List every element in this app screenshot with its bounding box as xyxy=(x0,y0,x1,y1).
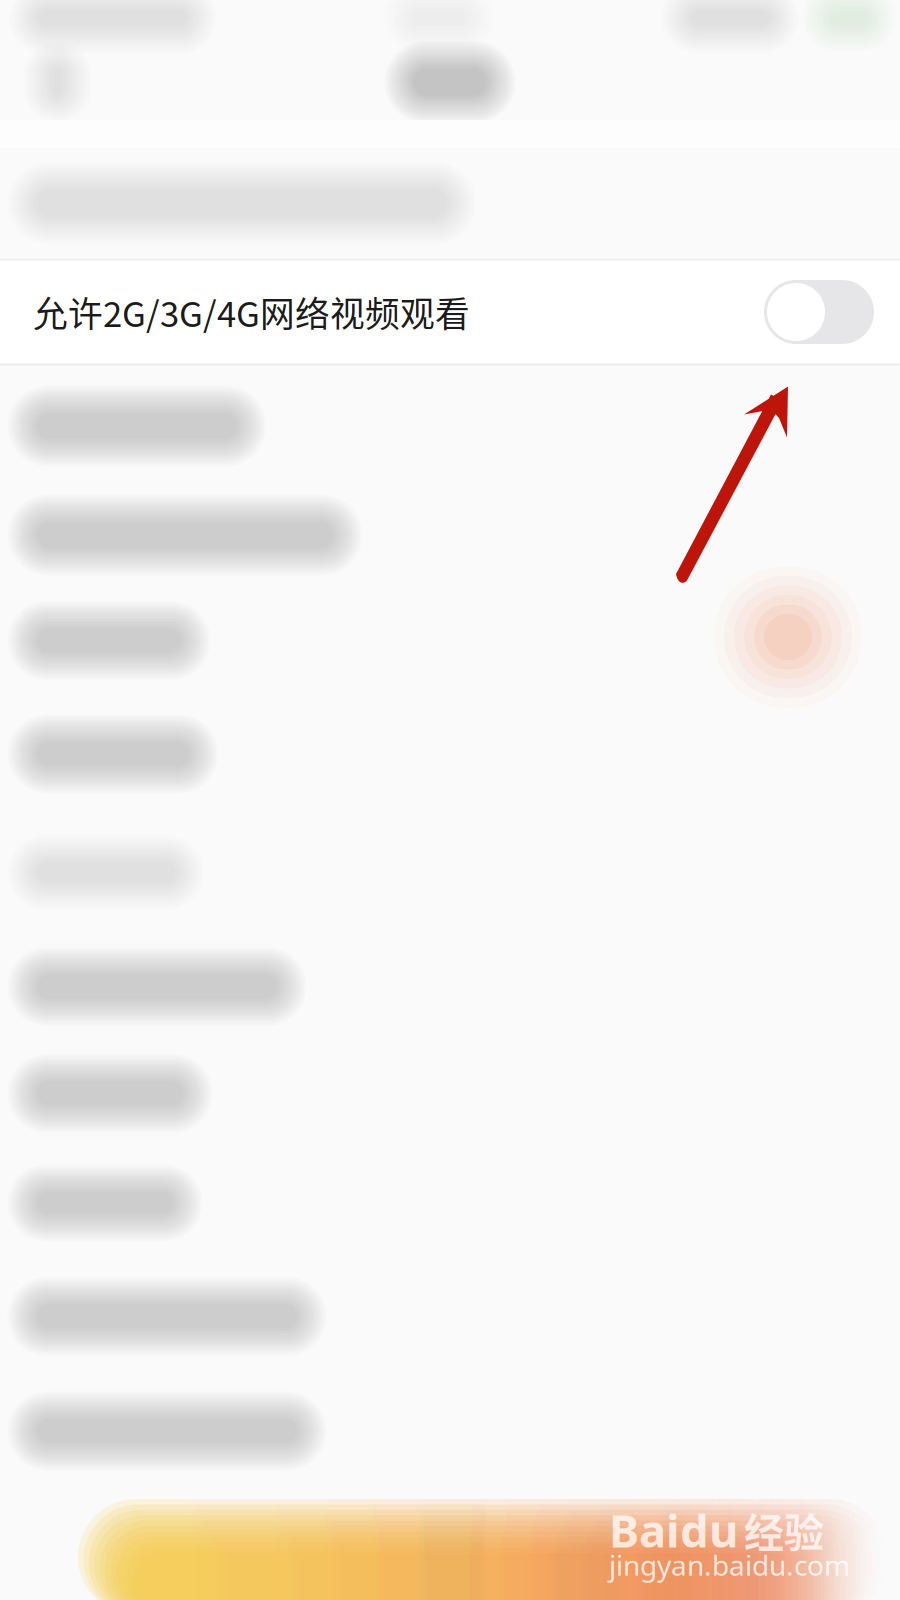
button[interactable] xyxy=(0,1258,900,1375)
button[interactable] xyxy=(0,1039,900,1148)
button[interactable] xyxy=(0,697,900,811)
staticText: Baidu xyxy=(609,1500,738,1560)
button[interactable] xyxy=(0,584,900,697)
button[interactable] xyxy=(0,366,900,486)
staticText: jingyan.baidu.com xyxy=(609,1546,850,1584)
button[interactable] xyxy=(0,811,900,934)
button[interactable]: 允许2G/3G/4G网络视频观看 xyxy=(0,261,900,363)
staticText: 经验 xyxy=(744,1501,824,1559)
staticText: 允许2G/3G/4G网络视频观看 xyxy=(33,287,470,337)
button[interactable] xyxy=(0,1148,900,1258)
button[interactable] xyxy=(0,934,900,1039)
button[interactable] xyxy=(0,486,900,584)
button[interactable] xyxy=(0,148,900,258)
button[interactable] xyxy=(0,1375,900,1487)
